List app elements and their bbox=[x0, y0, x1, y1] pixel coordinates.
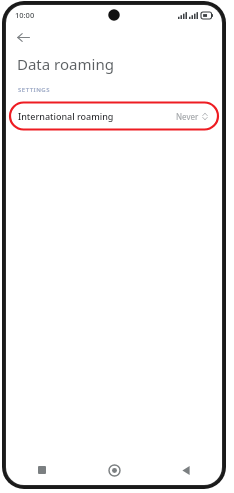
staticText: SETTINGS bbox=[18, 86, 50, 94]
button[interactable]: International roaming bbox=[6, 100, 222, 132]
staticText: Data roaming bbox=[17, 54, 114, 74]
staticText: Never bbox=[176, 111, 199, 122]
staticText: 10:00 bbox=[15, 10, 35, 20]
button[interactable]: Back bbox=[12, 26, 34, 48]
staticText: International roaming bbox=[18, 110, 114, 122]
button[interactable]: Home bbox=[78, 455, 150, 485]
button[interactable]: Recents bbox=[6, 455, 78, 485]
button[interactable]: Back bbox=[150, 455, 222, 485]
